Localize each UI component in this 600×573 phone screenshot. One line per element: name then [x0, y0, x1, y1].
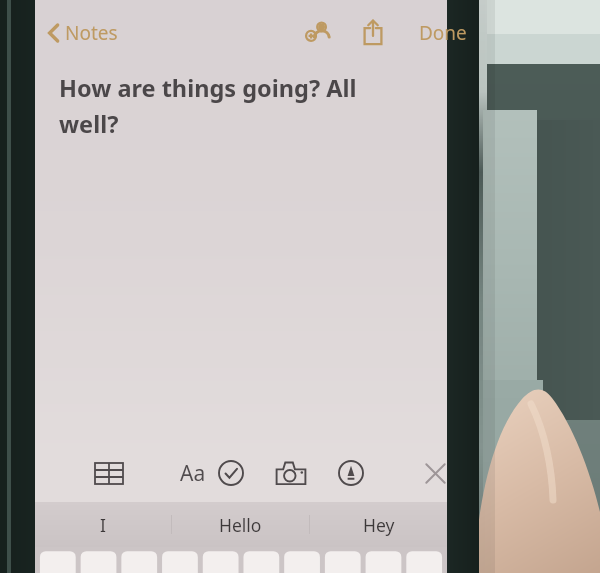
staticText: How are things going? All: [59, 72, 357, 104]
button[interactable]: I: [35, 502, 171, 547]
staticText: Notes: [65, 20, 118, 46]
staticText: Aa: [180, 459, 206, 488]
button[interactable]: Aa: [170, 450, 216, 496]
button[interactable]: Close keyboard: [412, 450, 458, 496]
button[interactable]: Checklist: [208, 450, 254, 496]
button[interactable]: Share: [351, 10, 395, 54]
staticText: well?: [59, 108, 119, 140]
staticText: Done: [419, 20, 467, 46]
button[interactable]: Add People: [297, 10, 341, 54]
button[interactable]: Done: [413, 14, 473, 52]
button[interactable]: Markup: [328, 450, 374, 496]
button[interactable]: Notes: [41, 14, 124, 52]
button[interactable]: How are things going? All: [35, 62, 447, 140]
button[interactable]: Hello: [172, 502, 309, 547]
button[interactable]: Table: [86, 450, 132, 496]
button[interactable]: Camera: [268, 450, 314, 496]
staticText: Hey: [363, 513, 395, 537]
button[interactable]: Hey: [310, 502, 447, 547]
staticText: I: [100, 513, 106, 537]
staticText: Hello: [219, 513, 262, 537]
